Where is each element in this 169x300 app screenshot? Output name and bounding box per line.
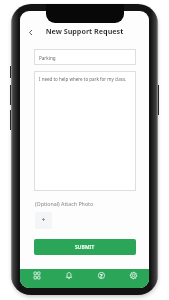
staticText: New Support Request <box>20 26 149 36</box>
button[interactable]: Notifications <box>53 269 85 288</box>
button[interactable]: Attach photo <box>35 212 52 229</box>
button[interactable]: Back <box>24 26 36 38</box>
staticText: ? <box>100 272 103 279</box>
button[interactable]: Parking <box>34 49 136 65</box>
staticText: SUBMIT <box>75 244 95 251</box>
staticText: I need to help where to park for my clas… <box>39 76 127 82</box>
button[interactable]: I need to help where to park for my clas… <box>34 71 136 191</box>
button[interactable]: Dashboard <box>20 269 53 288</box>
staticText: (Optional) Attach Photo <box>35 200 94 207</box>
staticText: Parking <box>39 55 56 61</box>
button[interactable]: Help <box>85 269 117 288</box>
button[interactable]: Settings <box>117 269 149 288</box>
button[interactable]: SUBMIT <box>34 239 136 255</box>
